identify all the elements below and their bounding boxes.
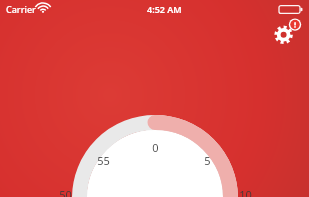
staticText: 4:52 AM <box>147 3 182 15</box>
button[interactable]: Settings – error <box>271 18 301 48</box>
staticText: 5 <box>204 153 211 167</box>
staticText: 50 <box>59 187 72 197</box>
staticText: Carrier <box>6 3 36 15</box>
staticText: 0 <box>152 140 159 154</box>
staticText: 10 <box>239 187 252 197</box>
staticText: 55 <box>97 153 110 167</box>
